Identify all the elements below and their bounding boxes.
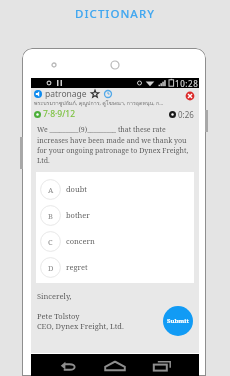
staticText: patronage [45,88,87,99]
button[interactable]: Close [185,91,195,101]
button[interactable]: B [36,204,194,226]
other: Favourite [91,90,99,98]
staticText: Submit [167,317,189,325]
button[interactable]: Submit [163,306,193,336]
staticText: We _________(9)_________ that these rate… [37,125,192,165]
staticText: Pete Tolstoy CEO, Dynex Freight, Ltd. [37,311,124,331]
button[interactable]: Home [94,354,136,376]
staticText: 7·8·9/12 [43,108,76,120]
staticText: Sincerely, [37,291,72,301]
staticText: พระบรมราชูปถัมภ์, คุณูปการ, คู่โฆษณา, กา… [34,99,164,107]
button[interactable]: Recents [141,354,183,376]
staticText: 10:28 [175,78,199,88]
staticText: regret [66,262,88,272]
staticText: concern [66,236,95,246]
staticText: C [48,237,53,247]
staticText: B [48,211,53,221]
staticText: D [48,263,54,273]
staticText: 0:26 [178,109,194,120]
button[interactable]: A [36,178,194,200]
button[interactable]: D [36,256,194,278]
button[interactable]: patronage [31,88,199,99]
staticText: DICTIONARY [0,6,230,22]
button[interactable]: C [36,230,194,252]
staticText: A [48,185,54,195]
button[interactable]: Back [47,354,89,376]
other: History [104,90,112,98]
staticText: doubt [66,184,87,194]
staticText: bother [66,210,90,220]
